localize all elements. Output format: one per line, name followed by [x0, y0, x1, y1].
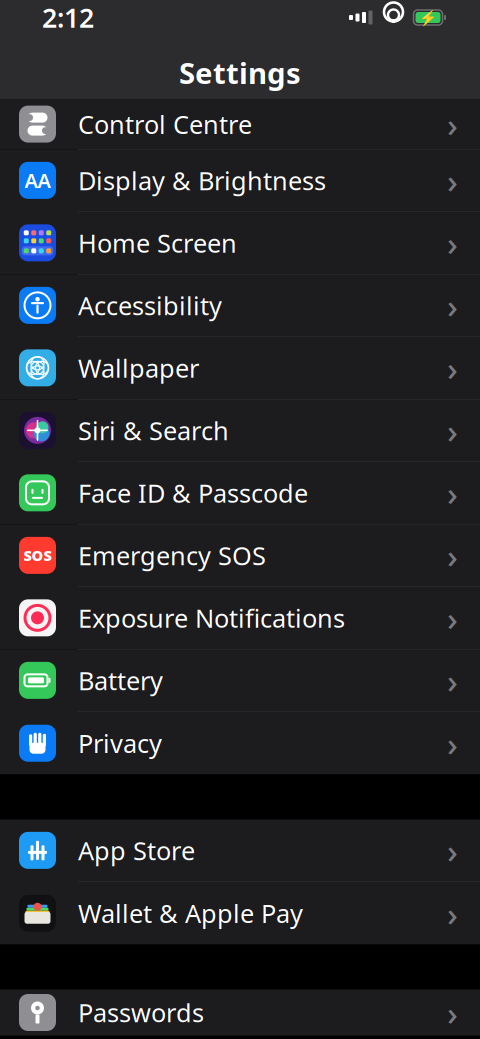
button[interactable]: App Store: [0, 819, 480, 882]
staticText: Wallet & Apple Pay: [78, 896, 303, 930]
button[interactable]: Control Centre: [0, 99, 480, 149]
button[interactable]: Face ID & Passcode: [0, 462, 480, 524]
staticText: ›: [447, 596, 458, 640]
staticText: Passwords: [78, 996, 204, 1029]
staticText: Display & Brightness: [78, 163, 326, 197]
button[interactable]: AA: [0, 149, 480, 212]
staticText: Wallpaper: [78, 351, 199, 385]
staticText: Home Screen: [78, 226, 237, 260]
button[interactable]: Passwords: [0, 989, 480, 1035]
staticText: ›: [447, 283, 458, 327]
button[interactable]: SOS: [0, 524, 480, 587]
staticText: Siri & Search: [78, 413, 229, 447]
staticText: ⚡: [419, 9, 437, 26]
staticText: Privacy: [78, 726, 162, 760]
staticText: ›: [447, 658, 458, 702]
button[interactable]: Wallpaper: [0, 337, 480, 399]
staticText: AA: [24, 167, 50, 194]
staticText: Face ID & Passcode: [78, 476, 308, 510]
staticText: ›: [447, 721, 458, 765]
button[interactable]: Exposure Notifications: [0, 587, 480, 649]
button[interactable]: Home Screen: [0, 212, 480, 274]
staticText: Emergency SOS: [78, 538, 266, 572]
staticText: ›: [447, 533, 458, 577]
staticText: Exposure Notifications: [78, 601, 345, 635]
staticText: ›: [447, 102, 458, 146]
staticText: ›: [447, 221, 458, 265]
button[interactable]: Wallet & Apple Pay: [0, 882, 480, 944]
staticText: ›: [447, 158, 458, 202]
staticText: SOS: [23, 546, 51, 565]
button[interactable]: Accessibility: [0, 274, 480, 337]
staticText: ›: [447, 891, 458, 935]
staticText: ›: [447, 346, 458, 390]
button[interactable]: Privacy: [0, 712, 480, 774]
staticText: ›: [447, 990, 458, 1035]
staticText: App Store: [78, 833, 195, 867]
staticText: Settings: [179, 53, 301, 92]
button[interactable]: Battery: [0, 649, 480, 712]
staticText: 2:12: [42, 0, 94, 35]
staticText: Battery: [78, 663, 163, 697]
staticText: ›: [447, 471, 458, 515]
button[interactable]: Siri & Search: [0, 399, 480, 462]
staticText: ›: [447, 828, 458, 872]
staticText: ›: [447, 408, 458, 452]
staticText: Control Centre: [78, 107, 252, 141]
staticText: Accessibility: [78, 288, 222, 322]
